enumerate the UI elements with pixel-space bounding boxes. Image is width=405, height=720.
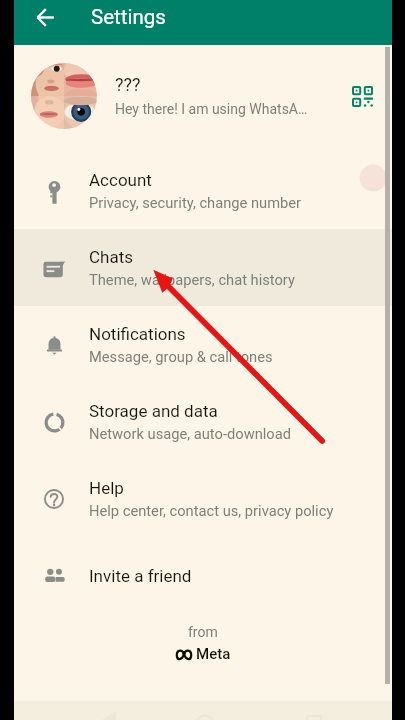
- staticText: Chats: [89, 247, 134, 267]
- button[interactable]: Back: [29, 1, 61, 33]
- button[interactable]: Invite a friend: [14, 537, 392, 614]
- staticText: Meta: [196, 645, 231, 663]
- staticText: from: [188, 624, 218, 640]
- button[interactable]: QR code: [340, 74, 384, 118]
- staticText: Notifications: [89, 324, 186, 344]
- staticText: Help center, contact us, privacy policy: [89, 502, 334, 519]
- staticText: Network usage, auto-download: [89, 425, 291, 442]
- staticText: ???: [115, 74, 141, 95]
- staticText: Hey there! I am using WhatsA…: [115, 101, 308, 117]
- staticText: Message, group & call tones: [89, 348, 273, 365]
- button[interactable]: Account: [14, 152, 392, 229]
- button[interactable]: Help: [14, 460, 392, 537]
- button[interactable]: Storage and data: [14, 383, 392, 460]
- staticText: Storage and data: [89, 401, 218, 421]
- staticText: Privacy, security, change number: [89, 194, 302, 211]
- staticText: Help: [89, 478, 124, 498]
- staticText: Theme, wallpapers, chat history: [89, 271, 295, 288]
- staticText: Account: [89, 170, 152, 190]
- button[interactable]: Notifications: [14, 306, 392, 383]
- button[interactable]: Chats: [14, 229, 392, 306]
- button[interactable]: ???: [14, 45, 392, 146]
- staticText: Settings: [91, 5, 166, 29]
- staticText: Invite a friend: [89, 566, 192, 586]
